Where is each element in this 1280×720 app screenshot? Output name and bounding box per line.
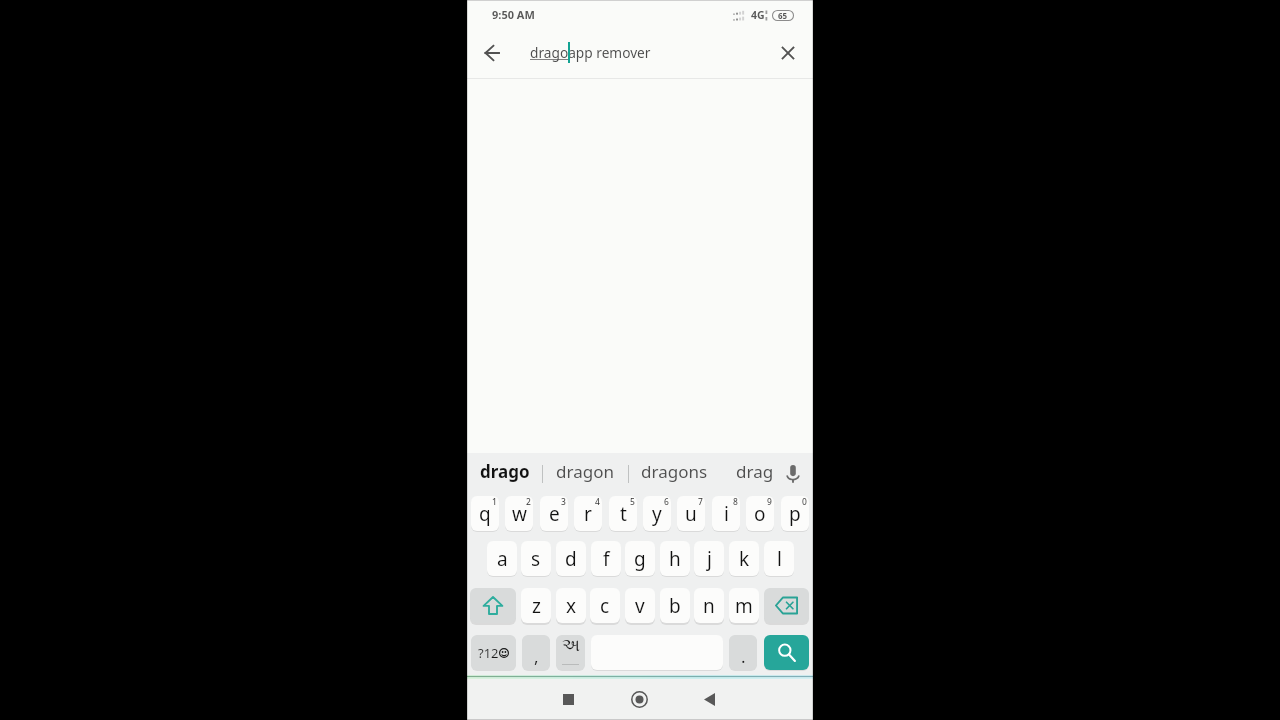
staticText: 2: [526, 496, 531, 508]
button[interactable]: m: [729, 588, 759, 623]
staticText: .: [741, 645, 746, 668]
staticText: z: [532, 593, 541, 619]
button[interactable]: Back: [691, 681, 728, 718]
button[interactable]: dragon: [556, 460, 614, 483]
button[interactable]: u: [677, 496, 705, 531]
button[interactable]: n: [694, 588, 724, 623]
button[interactable]: o: [746, 496, 774, 531]
staticText: dragon: [556, 460, 614, 483]
button[interactable]: v: [625, 588, 655, 623]
button[interactable]: Back: [474, 35, 510, 71]
staticText: b: [669, 593, 681, 619]
button[interactable]: drago: [480, 460, 530, 483]
staticText: x: [566, 593, 577, 619]
staticText: s: [531, 546, 541, 572]
staticText: dragons: [641, 460, 708, 483]
button[interactable]: f: [591, 541, 621, 576]
button[interactable]: g: [625, 541, 655, 576]
staticText: 4: [595, 496, 600, 508]
button[interactable]: Voice input: [780, 456, 806, 492]
staticText: i: [724, 501, 729, 527]
button[interactable]: w: [505, 496, 533, 531]
button[interactable]: j: [694, 541, 724, 576]
button[interactable]: e: [540, 496, 568, 531]
staticText: e: [549, 501, 560, 527]
staticText: dragon: [736, 460, 781, 483]
staticText: 1: [492, 496, 497, 508]
button[interactable]: s: [521, 541, 551, 576]
button[interactable]: a: [487, 541, 517, 576]
button[interactable]: ,: [522, 635, 550, 670]
button[interactable]: Home: [621, 681, 658, 718]
button[interactable]: Clear search: [770, 35, 806, 71]
button[interactable]: i: [712, 496, 740, 531]
staticText: a: [497, 546, 508, 572]
button[interactable]: h: [660, 541, 690, 576]
staticText: અ: [562, 637, 580, 654]
button[interactable]: d: [556, 541, 586, 576]
staticText: n: [703, 593, 715, 619]
button[interactable]: c: [590, 588, 620, 623]
staticText: 5: [630, 496, 635, 508]
staticText: c: [600, 593, 610, 619]
button[interactable]: y: [643, 496, 671, 531]
staticText: j: [707, 546, 712, 572]
button[interactable]: Recent apps: [550, 681, 587, 718]
button[interactable]: .: [729, 635, 757, 670]
staticText: d: [565, 546, 577, 572]
button[interactable]: z: [521, 588, 551, 623]
button[interactable]: q: [471, 496, 499, 531]
button[interactable]: x: [556, 588, 586, 623]
staticText: 9: [767, 496, 772, 508]
staticText: 8: [733, 496, 738, 508]
button[interactable]: Symbols: [471, 635, 516, 670]
staticText: g: [634, 546, 646, 572]
staticText: f: [603, 546, 610, 572]
button[interactable]: b: [660, 588, 690, 623]
staticText: 3: [561, 496, 566, 508]
staticText: m: [735, 593, 753, 619]
staticText: 65: [778, 10, 788, 21]
button[interactable]: dragons: [641, 460, 708, 483]
staticText: w: [512, 501, 527, 527]
staticText: 6: [664, 496, 669, 508]
staticText: q: [479, 501, 491, 527]
staticText: 4G: [751, 8, 765, 22]
button[interactable]: Language: [556, 635, 585, 670]
button[interactable]: r: [574, 496, 602, 531]
staticText: t: [620, 501, 627, 527]
staticText: 7: [698, 496, 703, 508]
staticText: v: [635, 593, 645, 619]
button[interactable]: Shift: [470, 588, 516, 623]
staticText: y: [652, 501, 662, 527]
button[interactable]: p: [781, 496, 809, 531]
staticText: ?12: [478, 644, 499, 662]
staticText: l: [777, 546, 782, 572]
staticText: u: [685, 501, 697, 527]
staticText: ,: [534, 645, 539, 668]
staticText: r: [584, 501, 592, 527]
staticText: 0: [802, 496, 807, 508]
button[interactable]: t: [609, 496, 637, 531]
staticText: p: [789, 501, 801, 527]
staticText: drago: [480, 460, 530, 483]
button[interactable]: dragon: [736, 460, 781, 484]
button[interactable]: k: [729, 541, 759, 576]
button[interactable]: Search: [764, 635, 809, 670]
button[interactable]: Backspace: [764, 588, 809, 623]
staticText: k: [739, 546, 750, 572]
staticText: o: [754, 501, 766, 527]
staticText: h: [669, 546, 681, 572]
staticText: 9:50 AM: [492, 7, 535, 22]
staticText: dragoapp remover: [530, 43, 651, 62]
button[interactable]: l: [764, 541, 794, 576]
